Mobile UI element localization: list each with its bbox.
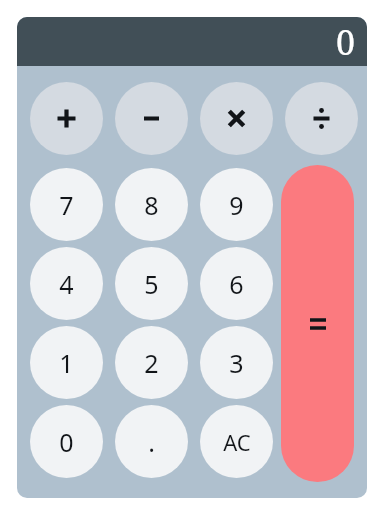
staticText: 4 bbox=[59, 267, 74, 301]
staticText: 0 bbox=[336, 19, 356, 65]
staticText: 7 bbox=[59, 188, 74, 222]
staticText: 8 bbox=[144, 188, 159, 222]
staticText: 9 bbox=[229, 188, 244, 222]
button[interactable]: Plus bbox=[30, 82, 103, 155]
staticText: 1 bbox=[59, 346, 74, 380]
button[interactable]: 5 bbox=[115, 247, 188, 320]
button[interactable]: 8 bbox=[115, 168, 188, 241]
button[interactable]: 4 bbox=[30, 247, 103, 320]
staticText: 3 bbox=[229, 346, 244, 380]
button[interactable]: 0 bbox=[30, 405, 103, 478]
button[interactable]: . bbox=[115, 405, 188, 478]
button[interactable]: 3 bbox=[200, 326, 273, 399]
button[interactable]: 9 bbox=[200, 168, 273, 241]
staticText: AC bbox=[223, 427, 251, 457]
staticText: . bbox=[148, 425, 155, 459]
staticText: 5 bbox=[144, 267, 159, 301]
button[interactable]: 0 bbox=[17, 17, 367, 66]
button[interactable]: Multiply bbox=[200, 82, 273, 155]
button[interactable]: 1 bbox=[30, 326, 103, 399]
button[interactable]: Minus bbox=[115, 82, 188, 155]
staticText: 6 bbox=[229, 267, 244, 301]
button[interactable]: 7 bbox=[30, 168, 103, 241]
staticText: 0 bbox=[59, 425, 74, 459]
other: Equals bbox=[281, 165, 354, 482]
button[interactable]: 6 bbox=[200, 247, 273, 320]
button[interactable]: Divide bbox=[285, 82, 358, 155]
staticText: 2 bbox=[144, 346, 159, 380]
button[interactable]: Equals bbox=[281, 165, 354, 482]
button[interactable]: 2 bbox=[115, 326, 188, 399]
button[interactable]: AC bbox=[200, 405, 273, 478]
